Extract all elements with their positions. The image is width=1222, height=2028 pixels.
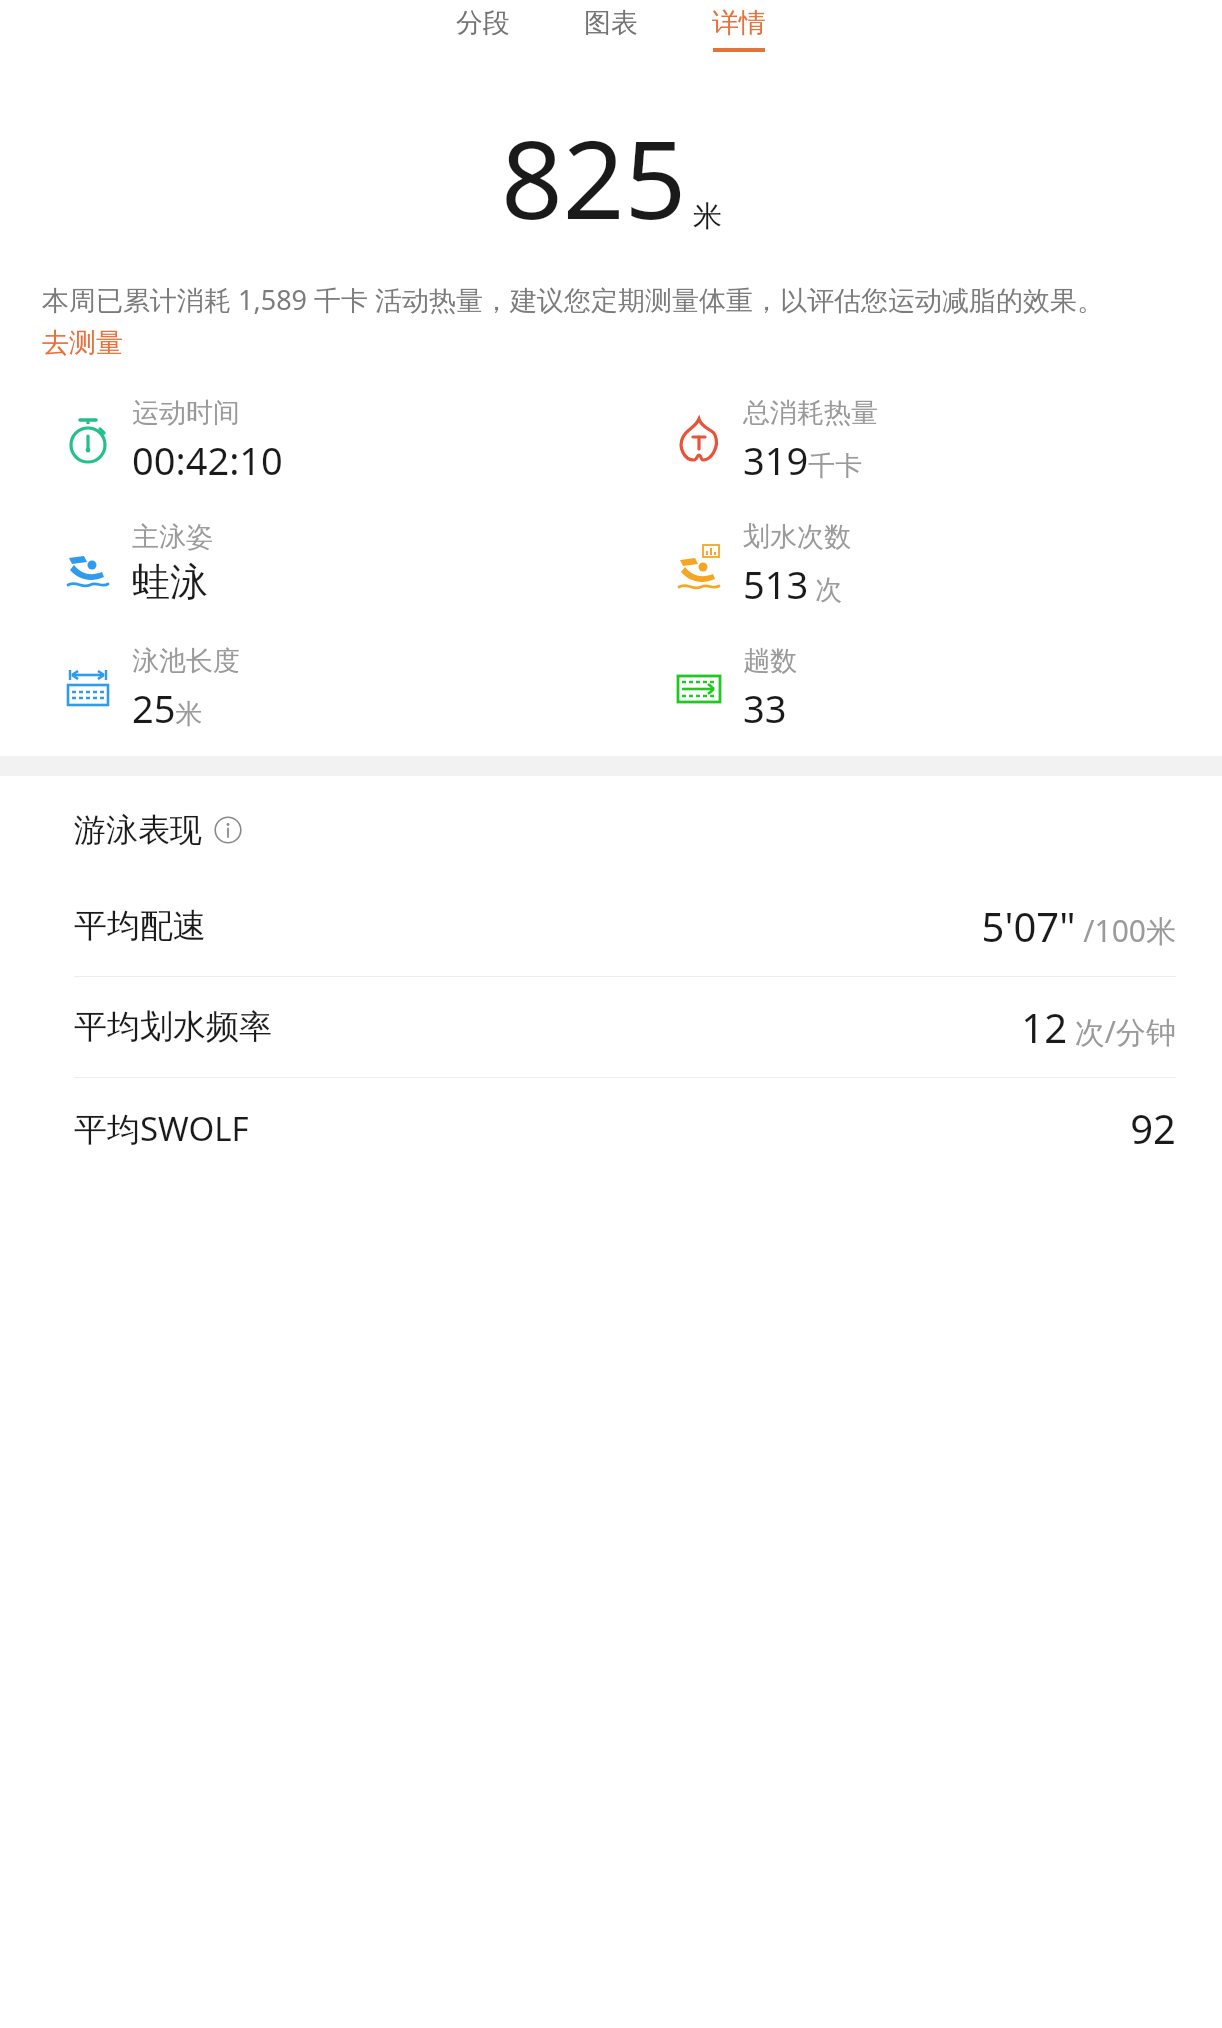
staticText: 蛙泳 (132, 558, 208, 606)
other: Pool length (62, 663, 114, 715)
staticText: 平均SWOLF (74, 1106, 249, 1151)
staticText: 详情 (712, 6, 766, 40)
staticText: 泳池长度 (132, 644, 240, 678)
staticText: 游泳表现 (74, 810, 202, 850)
staticText: 33 (743, 682, 787, 734)
staticText: 去测量 (42, 326, 123, 360)
other: Calories (673, 415, 725, 467)
staticText: 25米 (132, 682, 203, 734)
staticText: 平均划水频率 (74, 1006, 272, 1048)
button[interactable]: Pool length (0, 644, 611, 734)
button[interactable]: Swimmer (611, 520, 1222, 610)
staticText: 趟数 (743, 644, 797, 678)
button[interactable]: 去测量 (42, 326, 123, 360)
button[interactable]: Info (214, 816, 242, 844)
staticText: 00:42:10 (132, 434, 283, 486)
other: Swimmer (673, 539, 725, 591)
staticText: 本周已累计消耗 1,589 千卡 活动热量，建议您定期测量体重，以评估您运动减脂… (42, 281, 1105, 318)
staticText: 总消耗热量 (743, 396, 878, 430)
staticText: 主泳姿 (132, 520, 213, 554)
staticText: 5'07" /100米 (981, 899, 1176, 953)
staticText: 划水次数 (743, 520, 851, 554)
button[interactable]: Laps (611, 644, 1222, 734)
button[interactable]: 详情 (702, 0, 776, 58)
staticText: 运动时间 (132, 396, 240, 430)
staticText: 分段 (456, 6, 510, 40)
staticText: 319千卡 (743, 434, 863, 486)
button[interactable]: 平均SWOLF (0, 1078, 1222, 1178)
other: Laps (673, 663, 725, 715)
staticText: 平均配速 (74, 905, 206, 947)
button[interactable]: Calories (611, 396, 1222, 486)
button[interactable]: 平均划水频率 (0, 977, 1222, 1077)
staticText: 513 次 (743, 558, 843, 610)
other: Swimmer (62, 537, 114, 589)
button[interactable]: 分段 (446, 0, 520, 54)
button[interactable]: 图表 (574, 0, 648, 54)
button[interactable]: Swimmer (0, 520, 611, 606)
other: Duration (62, 415, 114, 467)
staticText: 米 (693, 198, 722, 235)
button[interactable]: 平均配速 (0, 876, 1222, 976)
staticText: 12 次/分钟 (1021, 1000, 1176, 1054)
button[interactable]: Duration (0, 396, 611, 486)
staticText: 92 (1130, 1101, 1176, 1155)
staticText: 825 (501, 104, 687, 251)
staticText: 图表 (584, 6, 638, 40)
